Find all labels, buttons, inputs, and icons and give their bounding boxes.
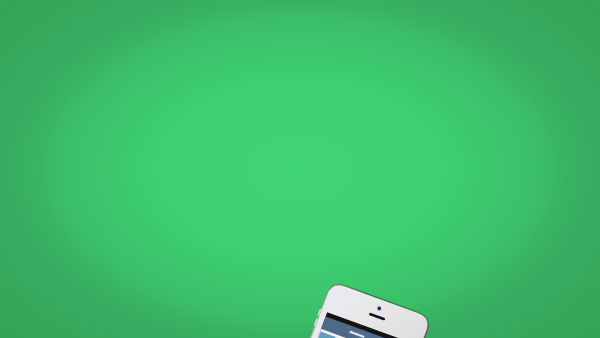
button[interactable]: Phone mockup xyxy=(0,0,600,338)
